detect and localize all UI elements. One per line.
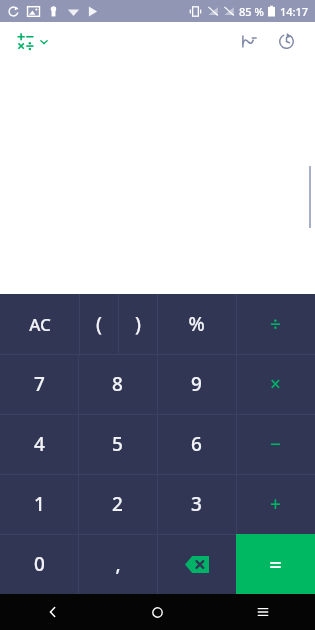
button[interactable]: Graph [231,24,265,58]
staticText: ( [96,311,102,337]
button[interactable]: % [157,294,236,354]
staticText: 5 [112,431,123,457]
button[interactable]: Operations menu [16,32,49,51]
button[interactable]: Home [105,594,210,630]
staticText: 6 [191,431,202,457]
staticText: , [115,551,121,577]
staticText: 0 [34,551,45,577]
button[interactable]: 8 [78,354,157,414]
button[interactable]: 3 [157,474,236,534]
button[interactable]: Backspace [157,534,236,594]
staticText: 7 [34,371,45,397]
button[interactable]: 2 [78,474,157,534]
button[interactable]: 5 [78,414,157,474]
button[interactable]: − [236,414,315,474]
button[interactable]: 1 [0,474,78,534]
staticText: − [270,431,281,457]
button[interactable]: History [269,24,303,58]
button[interactable]: 7 [0,354,78,414]
staticText: 1 [34,491,45,517]
staticText: = [269,549,282,579]
button[interactable]: AC [0,294,79,354]
button[interactable]: 0 [0,534,78,594]
staticText: AC [29,313,51,336]
staticText: 8 [112,371,123,397]
staticText: 2 [112,491,123,517]
button[interactable]: + [236,474,315,534]
button[interactable]: Back [0,594,105,630]
staticText: ) [135,311,141,337]
button[interactable]: 9 [157,354,236,414]
button[interactable]: ( [79,294,118,354]
button[interactable]: × [236,354,315,414]
button[interactable]: 6 [157,414,236,474]
staticText: 14:17 [280,4,309,19]
button[interactable]: 4 [0,414,78,474]
button[interactable]: Recents [210,594,315,630]
staticText: 3 [191,491,202,517]
button[interactable]: ÷ [236,294,315,354]
staticText: 85 % [239,4,264,19]
button[interactable]: = [236,534,315,594]
staticText: + [270,491,281,517]
staticText: ÷ [270,311,281,337]
staticText: 9 [191,371,202,397]
button[interactable]: , [78,534,157,594]
button[interactable]: ) [118,294,157,354]
staticText: × [270,371,281,397]
staticText: 4 [34,431,45,457]
staticText: % [188,311,205,337]
